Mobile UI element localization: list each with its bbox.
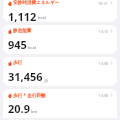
staticText: 歩行	[13, 60, 23, 66]
button[interactable]: 静息能量	[3, 25, 117, 54]
staticText: 静息能量	[13, 28, 32, 34]
staticText: km	[31, 109, 38, 115]
staticText: 13:08	[98, 93, 108, 98]
staticText: kcal	[38, 15, 46, 21]
button[interactable]: 安静時消費エネルギー	[3, 0, 117, 22]
staticText: 13:08	[98, 61, 108, 66]
staticText: 945	[8, 37, 27, 52]
staticText: 13:13	[98, 1, 108, 6]
staticText: 13:13	[98, 29, 108, 34]
staticText: 1,112	[8, 9, 37, 22]
staticText: 安静時消費エネルギー	[13, 0, 60, 6]
button[interactable]: 歩行	[3, 57, 117, 86]
button[interactable]: 歩行 + 走行距離	[3, 89, 117, 118]
staticText: kcal	[28, 45, 36, 51]
staticText: 31,456	[8, 69, 43, 84]
staticText: 歩	[44, 78, 49, 83]
staticText: 20.9	[8, 101, 30, 116]
staticText: 歩行 + 走行距離	[13, 92, 46, 98]
